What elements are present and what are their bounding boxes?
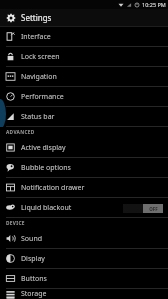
button[interactable]: Notification drawer bbox=[0, 178, 168, 197]
staticText: Active display bbox=[21, 143, 163, 153]
staticText: Sound bbox=[21, 234, 163, 244]
staticText: Bubble options bbox=[21, 163, 163, 173]
staticText: Navigation bbox=[21, 72, 163, 82]
button[interactable]: Navigation bbox=[0, 67, 168, 86]
staticText: Performance bbox=[21, 92, 163, 102]
button[interactable]: Lock screen bbox=[0, 47, 168, 66]
staticText: Settings bbox=[21, 12, 52, 23]
button[interactable]: Status bar bbox=[0, 107, 168, 126]
button[interactable]: Interface bbox=[0, 27, 168, 46]
staticText: Status bar bbox=[21, 112, 163, 122]
staticText: Storage bbox=[21, 289, 163, 299]
staticText: Buttons bbox=[21, 274, 163, 284]
button[interactable]: Settings bbox=[0, 9, 168, 26]
staticText: ADVANCED bbox=[6, 129, 35, 136]
staticText: 10:25 PM bbox=[142, 1, 166, 8]
button[interactable]: Sound bbox=[0, 229, 168, 248]
button[interactable]: Bubble options bbox=[0, 158, 168, 177]
button[interactable]: Liquid blackout bbox=[0, 198, 168, 217]
button[interactable]: Buttons bbox=[0, 269, 168, 288]
staticText: Lock screen bbox=[21, 52, 163, 62]
button[interactable]: Display bbox=[0, 249, 168, 268]
button[interactable]: Storage bbox=[0, 289, 168, 299]
staticText: OFF bbox=[149, 206, 158, 212]
staticText: Interface bbox=[21, 32, 163, 42]
button[interactable]: Liquid blackout toggle, off bbox=[123, 203, 163, 213]
staticText: DEVICE bbox=[6, 220, 25, 227]
staticText: Liquid blackout bbox=[21, 203, 123, 213]
staticText: Notification drawer bbox=[21, 183, 163, 193]
staticText: Display bbox=[21, 254, 163, 264]
button[interactable]: Active display bbox=[0, 138, 168, 157]
button[interactable]: Performance bbox=[0, 87, 168, 106]
